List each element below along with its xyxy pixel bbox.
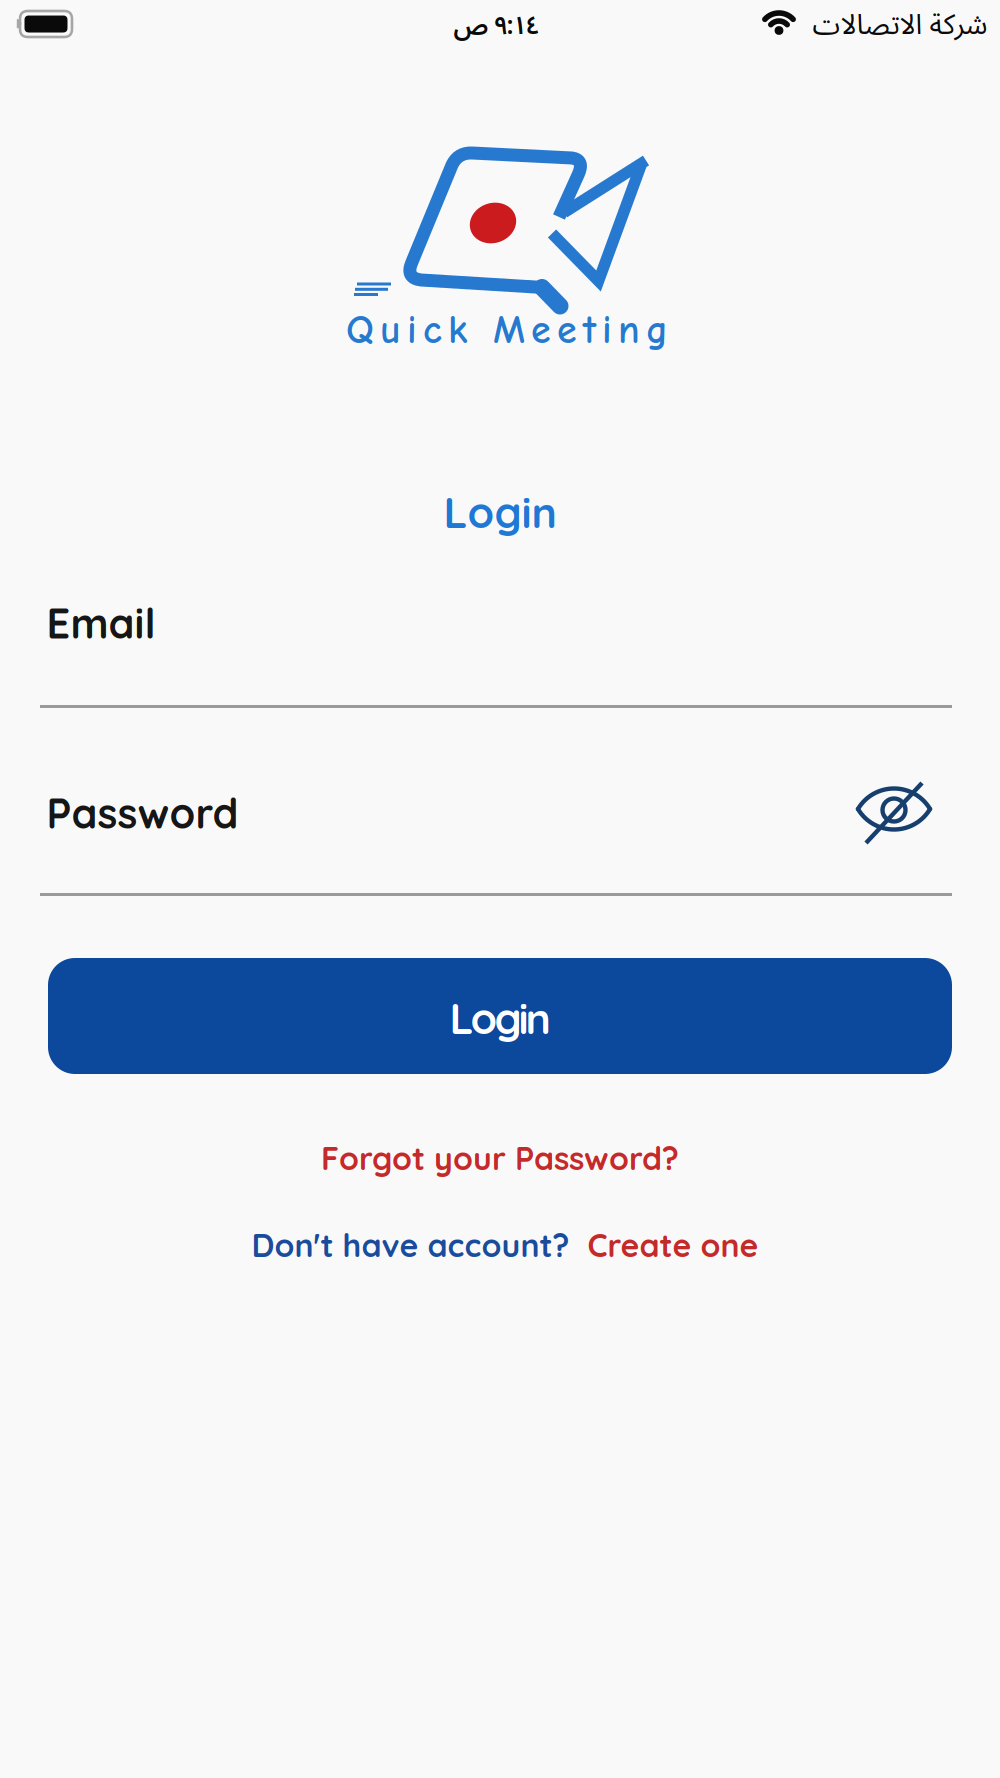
button[interactable]: Password — [40, 784, 952, 896]
staticText: Don't have account? — [251, 1225, 569, 1265]
staticText: Login — [443, 485, 556, 539]
staticText: شركة الاتصالات — [812, 0, 987, 54]
button[interactable]: Create one — [587, 1225, 758, 1265]
staticText: Create one — [587, 1225, 758, 1265]
staticText: ٩:١٤ ص — [453, 0, 539, 53]
staticText: Quick Meeting — [346, 307, 668, 353]
button[interactable]: Email — [40, 592, 952, 708]
staticText: Password — [46, 787, 238, 839]
staticText: Login — [449, 991, 550, 1045]
staticText: Email — [46, 597, 155, 649]
button[interactable]: Login — [48, 958, 952, 1074]
button[interactable] — [856, 779, 932, 843]
staticText: Forgot your Password? — [321, 1138, 679, 1178]
button[interactable]: Forgot your Password? — [321, 1138, 679, 1178]
